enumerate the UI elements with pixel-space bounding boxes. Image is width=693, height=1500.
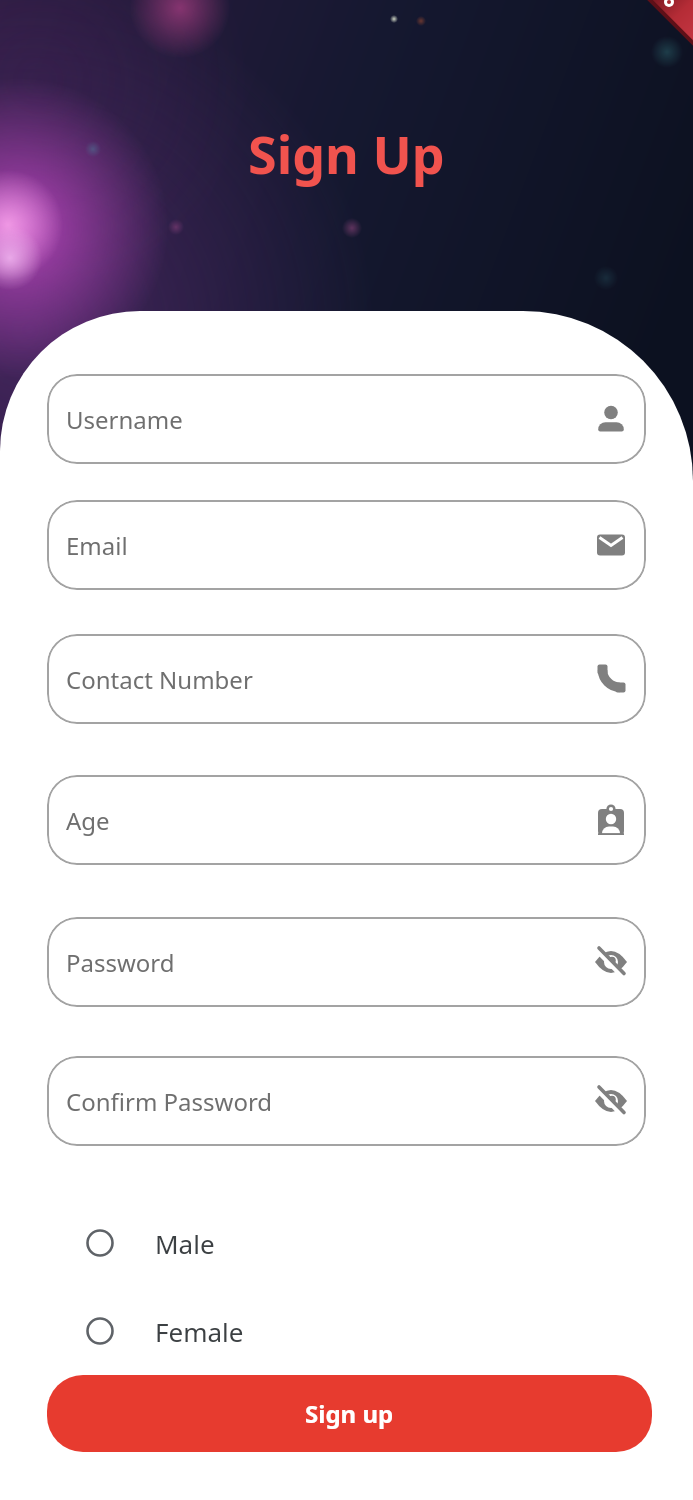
staticText: Sign up: [305, 1397, 394, 1430]
button[interactable]: Password: [47, 917, 646, 1007]
button[interactable]: Confirm Password: [47, 1056, 646, 1146]
staticText: Sign Up: [248, 118, 445, 188]
staticText: Confirm Password: [66, 1085, 273, 1118]
staticText: Password: [66, 946, 175, 979]
button[interactable]: Female: [86, 1313, 306, 1349]
button[interactable]: Contact Number: [47, 634, 646, 724]
staticText: Age: [66, 804, 110, 837]
button[interactable]: Male: [86, 1225, 306, 1261]
button[interactable]: Username: [47, 374, 646, 464]
button[interactable]: Age: [47, 775, 646, 865]
staticText: Contact Number: [66, 663, 253, 696]
staticText: Email: [66, 529, 128, 562]
button[interactable]: Sign up: [47, 1375, 652, 1452]
button[interactable]: Email: [47, 500, 646, 590]
staticText: Male: [155, 1226, 215, 1261]
staticText: Username: [66, 403, 183, 436]
staticText: Female: [155, 1314, 244, 1349]
